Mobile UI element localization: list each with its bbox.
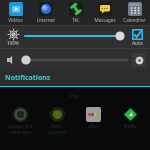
staticText: 100% (7, 40, 19, 46)
button[interactable]: Gest. appareils (41, 107, 73, 135)
button[interactable]: Vidéos (1, 2, 30, 23)
staticText: Play (70, 93, 80, 100)
staticText: Notifications (5, 73, 51, 83)
button[interactable]: Internet (31, 2, 60, 23)
button[interactable]: Auto (127, 29, 147, 46)
button[interactable]: Settings (132, 53, 146, 67)
button[interactable]: feedly (114, 107, 146, 129)
button[interactable]: Sound (4, 53, 17, 66)
button[interactable]: Volume level (20, 52, 129, 68)
staticText: Google Aut henticator (8, 123, 33, 135)
button[interactable]: Tél. (61, 2, 90, 23)
staticText: Messages (94, 17, 116, 23)
staticText: Gest. appareils (47, 123, 67, 135)
staticText: Internet (37, 17, 55, 23)
button[interactable]: Messages (90, 2, 119, 23)
button[interactable]: eBay (77, 107, 109, 129)
staticText: eBay (88, 123, 99, 129)
button[interactable]: Brightness (3, 29, 23, 46)
button[interactable]: Calendrier (120, 2, 149, 23)
button[interactable]: Brightness level (25, 28, 125, 46)
button[interactable]: Notifications (0, 70, 150, 86)
button[interactable]: Google Aut henticator (4, 107, 36, 135)
staticText: Auto (132, 40, 143, 46)
staticText: Vidéos (8, 17, 23, 23)
staticText: Calendrier (123, 17, 146, 23)
staticText: Tél. (72, 17, 80, 23)
staticText: feedly (123, 123, 137, 129)
